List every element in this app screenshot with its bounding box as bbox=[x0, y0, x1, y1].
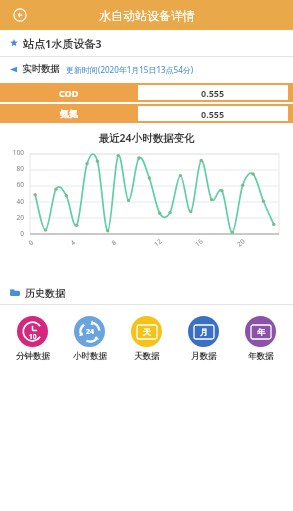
staticText: 8 bbox=[110, 238, 118, 247]
button[interactable]: 年数据 bbox=[232, 316, 289, 362]
staticText: 0.555 bbox=[201, 108, 225, 120]
button[interactable]: Back bbox=[8, 3, 32, 27]
staticText: 100 bbox=[0, 148, 24, 157]
staticText: 月数据 bbox=[191, 351, 217, 362]
staticText: 16 bbox=[193, 236, 205, 248]
staticText: 站点1水质设备3 bbox=[23, 36, 102, 51]
staticText: 年 bbox=[257, 327, 265, 337]
staticText: 0 bbox=[27, 238, 35, 247]
button[interactable]: 氨氮 bbox=[0, 104, 293, 123]
staticText: 分钟数据 bbox=[16, 351, 50, 362]
other: 月数据 bbox=[188, 316, 219, 347]
other: 年数据 bbox=[245, 316, 276, 347]
staticText: 天 bbox=[143, 327, 151, 337]
button[interactable]: 天数据 bbox=[118, 316, 175, 362]
staticText: 12 bbox=[152, 236, 164, 248]
staticText: COD bbox=[59, 87, 79, 99]
staticText: 20 bbox=[0, 213, 24, 222]
button[interactable]: 月数据 bbox=[175, 316, 232, 362]
staticText: 更新时间(2020年1月15日13点54分) bbox=[66, 64, 194, 75]
staticText: 年数据 bbox=[248, 351, 274, 362]
staticText: 水自动站设备详情 bbox=[99, 8, 195, 23]
staticText: 4 bbox=[69, 238, 77, 247]
staticText: 氨氮 bbox=[60, 108, 78, 119]
staticText: 40 bbox=[0, 197, 24, 206]
staticText: 历史数据 bbox=[25, 287, 65, 300]
button[interactable]: 分钟数据 bbox=[4, 316, 61, 362]
staticText: 24 bbox=[86, 327, 95, 337]
staticText: 60 bbox=[0, 180, 24, 189]
button[interactable]: COD bbox=[0, 83, 293, 102]
other: 分钟数据 bbox=[17, 316, 48, 347]
staticText: 0.555 bbox=[201, 87, 225, 99]
button[interactable]: 站点1水质设备3 bbox=[0, 30, 293, 56]
button[interactable]: 小时数据 bbox=[61, 316, 118, 362]
other: 小时数据 bbox=[74, 316, 105, 347]
staticText: 天数据 bbox=[134, 351, 160, 362]
staticText: 10 bbox=[29, 332, 37, 341]
staticText: 最近24小时数据变化 bbox=[0, 131, 293, 145]
staticText: 小时数据 bbox=[73, 351, 107, 362]
staticText: 实时数据 bbox=[22, 63, 60, 75]
other: 天数据 bbox=[131, 316, 162, 347]
staticText: 0 bbox=[0, 229, 24, 238]
staticText: 月 bbox=[200, 327, 208, 337]
staticText: 80 bbox=[0, 164, 24, 173]
staticText: 20 bbox=[235, 236, 247, 248]
